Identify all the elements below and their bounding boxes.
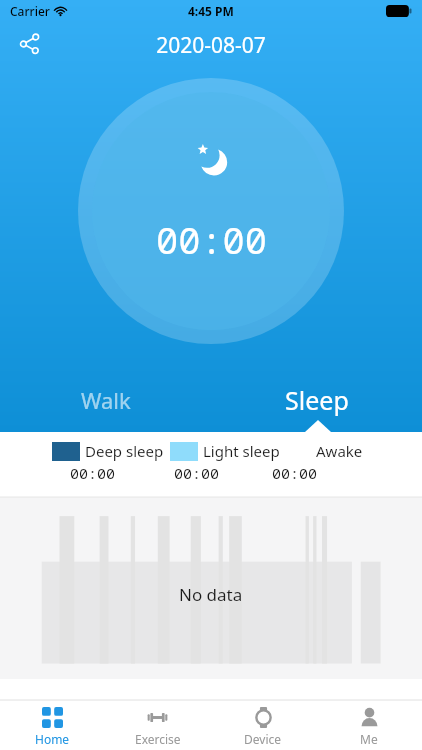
staticText: 00:00 <box>174 463 220 483</box>
staticText: Device <box>244 731 282 747</box>
staticText: Me <box>360 731 378 747</box>
button[interactable]: Exercise <box>105 701 210 750</box>
button[interactable]: Sleep <box>211 378 422 422</box>
button[interactable]: Device <box>210 701 316 750</box>
staticText: Sleep <box>285 383 349 417</box>
button[interactable]: Home <box>0 701 105 750</box>
staticText: 00:00 <box>70 463 116 483</box>
staticText: 00:00 <box>272 463 318 483</box>
staticText: Carrier <box>10 3 50 19</box>
staticText: 2020-08-07 <box>0 31 422 60</box>
staticText: No data <box>179 583 243 606</box>
staticText: Exercise <box>135 731 181 747</box>
button[interactable]: Me <box>316 701 422 750</box>
staticText: Home <box>35 731 70 747</box>
staticText: Light sleep <box>203 441 280 461</box>
staticText: 4:45 PM <box>188 3 234 19</box>
staticText: Walk <box>81 385 131 415</box>
staticText: Deep sleep <box>85 441 164 461</box>
staticText: 00:00 <box>156 214 267 264</box>
button[interactable]: Walk <box>0 378 211 422</box>
button[interactable]: Share <box>14 28 46 60</box>
staticText: Awake <box>316 441 363 461</box>
